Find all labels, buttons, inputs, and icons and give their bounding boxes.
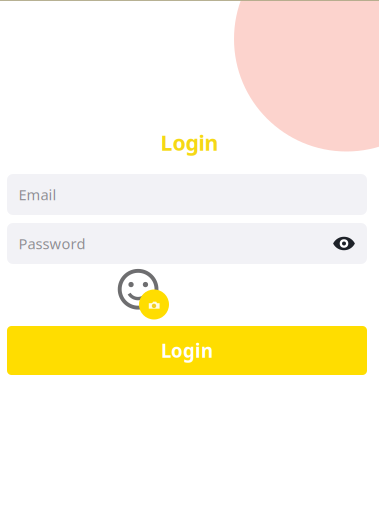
staticText: Login [160,128,218,157]
button[interactable]: Login [7,326,367,375]
button[interactable]: Show password [329,228,359,258]
staticText: Login [161,338,213,363]
staticText: Password [18,234,85,253]
staticText: Email [18,185,56,204]
button[interactable]: Change profile photo [118,269,169,317]
